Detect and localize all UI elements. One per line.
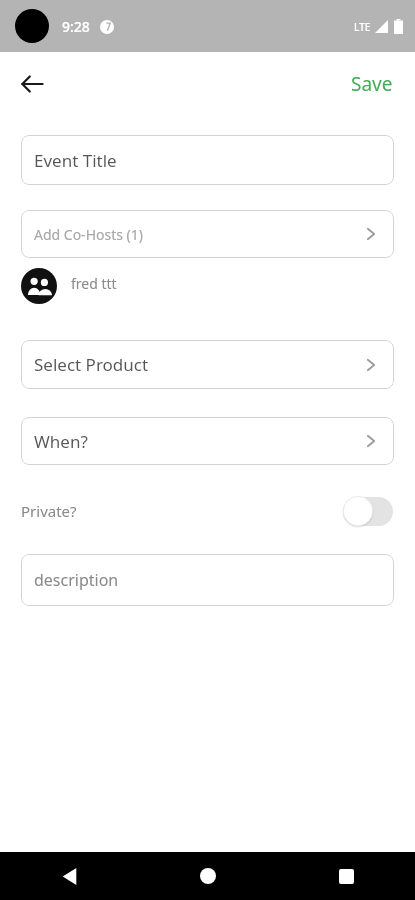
button[interactable]: Save <box>339 63 405 105</box>
button[interactable]: Recent apps <box>277 852 415 900</box>
button[interactable]: description <box>21 554 394 606</box>
staticText: Event Title <box>34 149 117 172</box>
button[interactable]: Back <box>0 852 139 900</box>
staticText: fred ttt <box>71 274 117 293</box>
staticText: Select Product <box>34 353 149 376</box>
button[interactable]: Event Title <box>21 135 394 185</box>
button[interactable]: Back <box>12 64 52 104</box>
button[interactable]: Select Product <box>21 340 394 389</box>
staticText: description <box>34 569 119 591</box>
button[interactable]: When? <box>21 417 394 465</box>
button[interactable]: fred ttt <box>21 268 394 304</box>
button[interactable]: Home <box>139 852 277 900</box>
staticText: Save <box>351 71 393 97</box>
staticText: 9:28 <box>62 17 90 36</box>
button[interactable]: Add Co-Hosts (1) <box>21 210 394 258</box>
staticText: Add Co-Hosts (1) <box>34 225 143 244</box>
button[interactable]: Private? <box>21 494 394 528</box>
staticText: LTE <box>354 20 371 34</box>
staticText: Private? <box>21 501 77 521</box>
staticText: When? <box>34 430 88 453</box>
